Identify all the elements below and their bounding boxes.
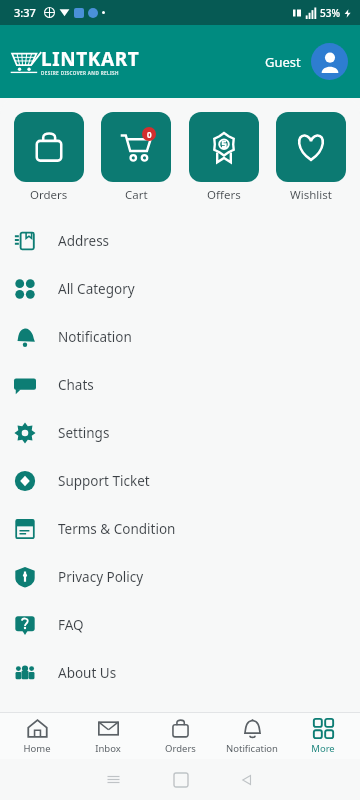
staticText: All Category bbox=[58, 280, 135, 298]
staticText: Offers bbox=[207, 187, 241, 203]
button[interactable]: Privacy Policy bbox=[0, 553, 360, 601]
button[interactable]: Orders bbox=[14, 112, 84, 203]
staticText: Privacy Policy bbox=[58, 568, 144, 586]
staticText: Notification bbox=[226, 742, 278, 755]
button[interactable]: Chats bbox=[0, 361, 360, 409]
staticText: About Us bbox=[58, 664, 117, 682]
button[interactable]: Guest bbox=[265, 43, 348, 80]
staticText: Wishlist bbox=[290, 187, 332, 203]
staticText: Chats bbox=[58, 376, 94, 394]
button[interactable]: Support Ticket bbox=[0, 457, 360, 505]
staticText: 3:37 bbox=[14, 5, 36, 20]
staticText: Orders bbox=[30, 187, 68, 203]
button[interactable]: All Category bbox=[0, 265, 360, 313]
staticText: 53% bbox=[320, 6, 340, 20]
button[interactable]: Terms & Condition bbox=[0, 505, 360, 553]
staticText: Terms & Condition bbox=[58, 520, 176, 538]
button[interactable]: Contact Us bbox=[0, 697, 360, 745]
staticText: Inbox bbox=[95, 742, 121, 755]
button[interactable]: Address bbox=[0, 217, 360, 265]
staticText: Support Ticket bbox=[58, 472, 150, 490]
button[interactable]: Notification bbox=[217, 718, 287, 755]
button[interactable]: Notification bbox=[0, 313, 360, 361]
staticText: More bbox=[311, 742, 335, 755]
staticText: DESIRE DISCOVER AND RELISH bbox=[41, 70, 119, 76]
staticText: Settings bbox=[58, 424, 110, 442]
staticText: LINTKART bbox=[41, 46, 140, 72]
button[interactable]: 0 bbox=[101, 112, 171, 203]
button[interactable]: FAQ bbox=[0, 601, 360, 649]
button[interactable]: More bbox=[288, 718, 358, 755]
button[interactable]: Home bbox=[2, 718, 72, 755]
other: Account bbox=[311, 43, 348, 80]
staticText: FAQ bbox=[58, 616, 84, 634]
staticText: Home bbox=[23, 742, 51, 755]
staticText: Cart bbox=[125, 187, 148, 203]
button[interactable]: About Us bbox=[0, 649, 360, 697]
staticText: Notification bbox=[58, 328, 132, 346]
staticText: 0 bbox=[147, 129, 152, 140]
button[interactable]: Orders bbox=[145, 718, 215, 755]
button[interactable]: Offers bbox=[189, 112, 259, 203]
staticText: Orders bbox=[165, 742, 196, 755]
staticText: Address bbox=[58, 232, 110, 250]
button[interactable]: Wishlist bbox=[276, 112, 346, 203]
staticText: Contact Us bbox=[58, 712, 127, 730]
button[interactable]: Inbox bbox=[73, 718, 143, 755]
staticText: Guest bbox=[265, 53, 301, 71]
button[interactable]: Settings bbox=[0, 409, 360, 457]
